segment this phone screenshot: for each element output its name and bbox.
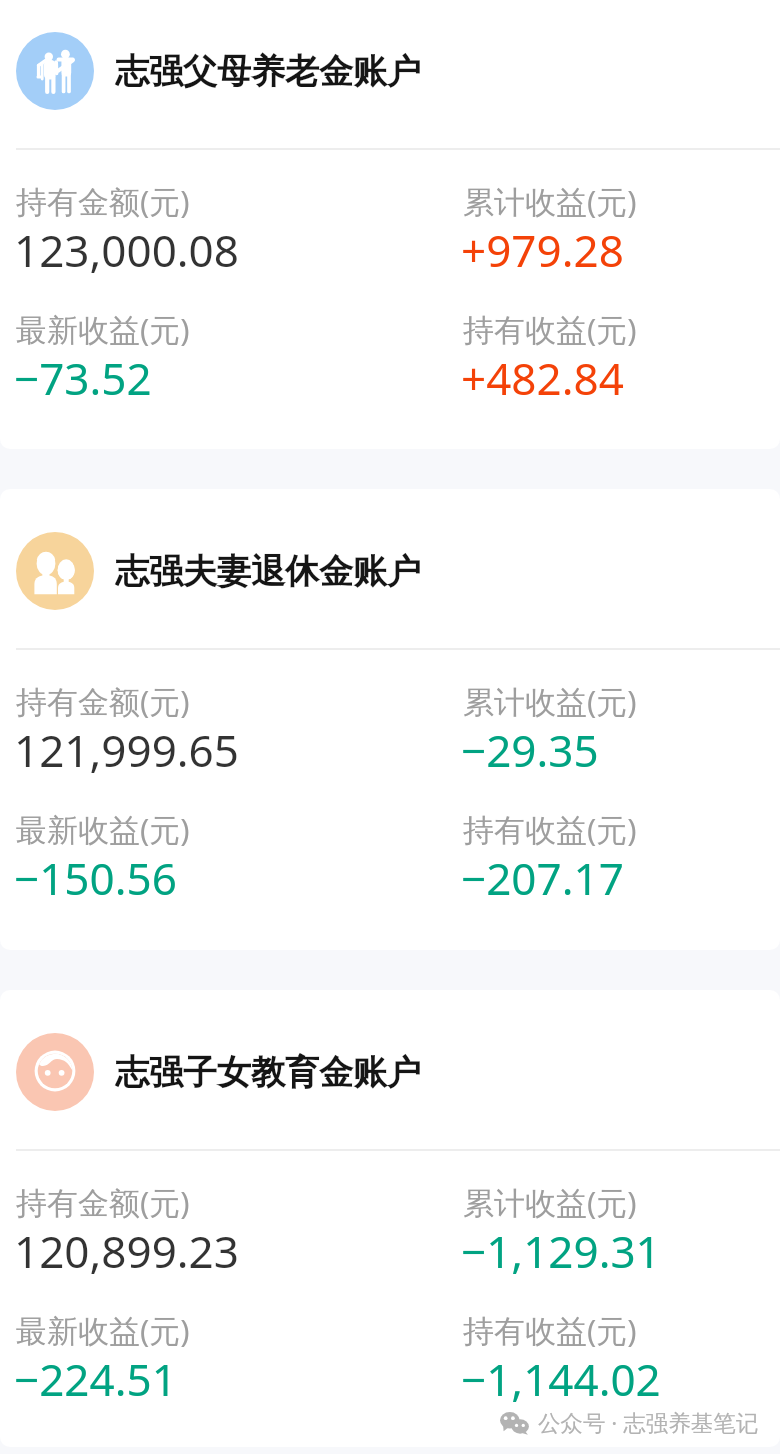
button[interactable]: 志强子女教育金账户 xyxy=(16,1033,94,1111)
staticText: 123,000.08 xyxy=(14,220,239,280)
staticText: 累计收益(元) xyxy=(463,1181,637,1223)
button[interactable]: 志强夫妻退休金账户 xyxy=(16,532,94,610)
staticText: 持有收益(元) xyxy=(463,808,637,850)
staticText: −207.17 xyxy=(461,848,624,908)
button[interactable]: 志强父母养老金账户 xyxy=(16,32,94,110)
staticText: −73.52 xyxy=(14,348,152,408)
staticText: 持有金额(元) xyxy=(16,680,190,722)
staticText: 志强子女教育金账户 xyxy=(115,1051,421,1094)
button[interactable]: 志强子女教育金账户 xyxy=(0,990,780,1447)
staticText: 志强父母养老金账户 xyxy=(115,50,421,93)
staticText: 持有金额(元) xyxy=(16,1181,190,1223)
button[interactable]: 志强夫妻退休金账户 xyxy=(0,489,780,950)
staticText: 120,899.23 xyxy=(14,1221,239,1281)
staticText: 持有收益(元) xyxy=(463,1309,637,1351)
staticText: −29.35 xyxy=(461,720,599,780)
staticText: −1,129.31 xyxy=(461,1221,661,1281)
staticText: 公众号 · 志强养基笔记 xyxy=(538,1407,759,1438)
button[interactable]: 志强父母养老金账户 xyxy=(0,0,780,449)
staticText: −1,144.02 xyxy=(461,1349,661,1409)
staticText: 志强夫妻退休金账户 xyxy=(115,550,421,593)
staticText: 累计收益(元) xyxy=(463,180,637,222)
staticText: 持有金额(元) xyxy=(16,180,190,222)
staticText: −150.56 xyxy=(14,848,177,908)
staticText: 121,999.65 xyxy=(14,720,239,780)
staticText: 最新收益(元) xyxy=(16,308,190,350)
staticText: −224.51 xyxy=(14,1349,177,1409)
staticText: +482.84 xyxy=(461,348,624,408)
staticText: 最新收益(元) xyxy=(16,808,190,850)
staticText: 累计收益(元) xyxy=(463,680,637,722)
staticText: 持有收益(元) xyxy=(463,308,637,350)
staticText: +979.28 xyxy=(461,220,624,280)
staticText: 最新收益(元) xyxy=(16,1309,190,1351)
